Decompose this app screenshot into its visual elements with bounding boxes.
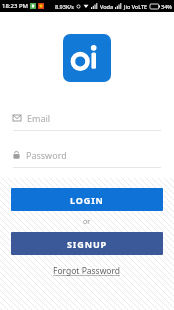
staticText: Jio VoLTE	[124, 3, 148, 10]
button[interactable]: Password	[13, 149, 161, 168]
button[interactable]: SIGNUP	[11, 232, 163, 255]
staticText: or	[83, 217, 91, 227]
other: Password	[13, 151, 20, 159]
other: Email	[13, 115, 21, 121]
button[interactable]: Email	[13, 112, 161, 131]
staticText: Forgot Password	[53, 265, 121, 277]
staticText: 34%	[161, 3, 172, 10]
staticText: SIGNUP	[67, 238, 108, 250]
staticText: 8.93K/s	[55, 3, 74, 10]
staticText: Voda	[100, 3, 113, 10]
staticText: Email	[27, 112, 51, 124]
button[interactable]: LOGIN	[11, 188, 163, 211]
staticText: LOGIN	[70, 194, 104, 206]
staticText: 18:23 PM	[2, 2, 28, 10]
staticText: Password	[26, 149, 67, 161]
button[interactable]: Forgot Password	[50, 264, 124, 278]
